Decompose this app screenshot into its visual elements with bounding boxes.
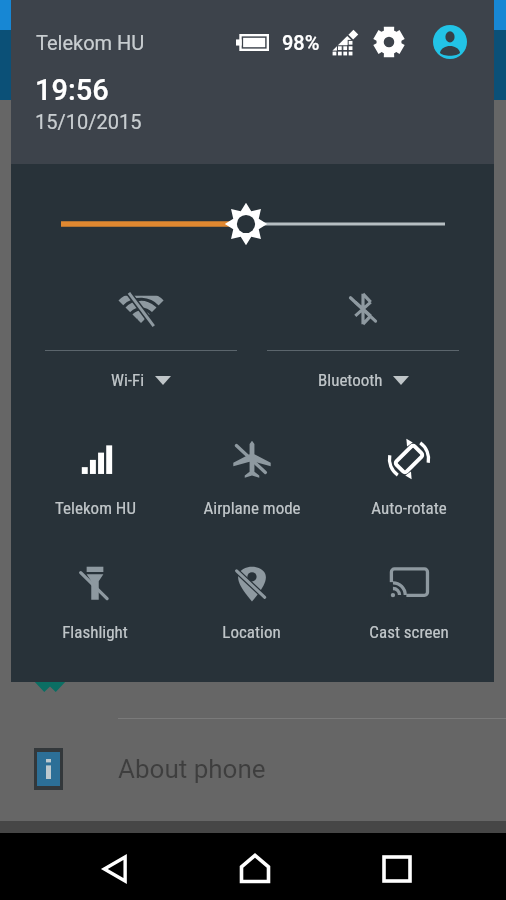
button[interactable]: Auto-rotate xyxy=(330,435,487,531)
button[interactable]: Brightness xyxy=(11,201,494,247)
button[interactable]: Settings xyxy=(373,26,405,58)
staticText: 15/10/2015 xyxy=(35,110,142,133)
button[interactable]: Home xyxy=(220,833,290,900)
staticText: Wi-Fi xyxy=(111,370,145,390)
button[interactable]: User account xyxy=(433,25,467,59)
staticText: Bluetooth xyxy=(318,370,383,390)
button[interactable]: Back xyxy=(80,833,150,900)
staticText: Auto-rotate xyxy=(371,498,447,518)
button[interactable]: Location xyxy=(173,559,330,655)
staticText: About phone xyxy=(118,754,266,784)
button[interactable]: Edit tiles xyxy=(331,28,360,57)
staticText: Cast screen xyxy=(369,622,449,642)
staticText: Telekom HU xyxy=(55,498,136,518)
staticText: Location xyxy=(222,622,281,642)
button[interactable]: Flashlight xyxy=(17,559,173,655)
button[interactable]: Airplane mode xyxy=(173,435,330,531)
button[interactable]: Bluetooth xyxy=(252,282,474,402)
button[interactable]: Wi-Fi xyxy=(30,282,252,402)
staticText: 98% xyxy=(282,31,320,54)
staticText: 19:56 xyxy=(35,73,109,107)
staticText: Flashlight xyxy=(62,622,128,642)
button[interactable]: Cast screen xyxy=(330,559,487,655)
button[interactable]: About phone xyxy=(0,719,506,819)
button[interactable]: Telekom HU xyxy=(17,435,173,531)
staticText: Telekom HU xyxy=(36,31,145,54)
button[interactable]: Recent apps xyxy=(362,833,432,900)
staticText: Airplane mode xyxy=(203,498,301,518)
